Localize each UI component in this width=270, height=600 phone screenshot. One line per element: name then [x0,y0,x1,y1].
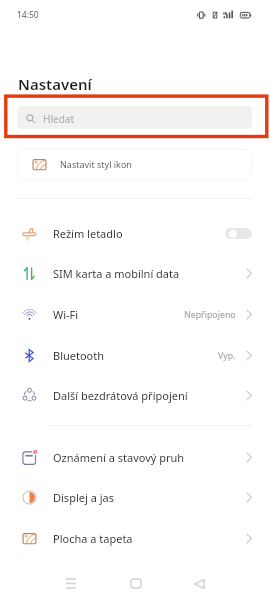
staticText: Další bezdrátová připojení [53,388,188,403]
staticText: Displej a jas [53,490,114,505]
staticText: Nastavení [18,74,92,94]
button[interactable]: Hledat [17,106,252,129]
button[interactable]: Bluetooth [0,335,270,376]
staticText: Oznámení a stavový pruh [53,450,185,465]
button[interactable]: Recent apps [55,568,86,599]
button[interactable]: SIM karta a mobilní data [0,253,270,294]
button[interactable]: Displej a jas [0,477,270,518]
button[interactable]: Nastavit styl ikon [17,149,252,180]
staticText: SIM karta a mobilní data [53,266,180,281]
staticText: Nastavit styl ikon [60,158,132,170]
staticText: Režim letadlo [53,226,123,241]
staticText: Wi-Fi [53,307,79,322]
button[interactable]: Oznámení a stavový pruh [0,437,270,478]
staticText: Plocha a tapeta [53,531,133,546]
button[interactable]: Home [120,568,151,599]
staticText: 14:50 [17,9,39,21]
staticText: Bluetooth [53,348,105,363]
button[interactable]: Wi-Fi [0,294,270,335]
button[interactable]: Back [183,568,214,599]
button[interactable]: Další bezdrátová připojení [0,375,270,416]
staticText: Nepřipojeno [184,309,236,321]
staticText: Vyp. [218,350,236,362]
button[interactable]: Režim letadlo [0,213,270,254]
button[interactable]: Plocha a tapeta [0,518,270,559]
staticText: Hledat [43,112,74,126]
